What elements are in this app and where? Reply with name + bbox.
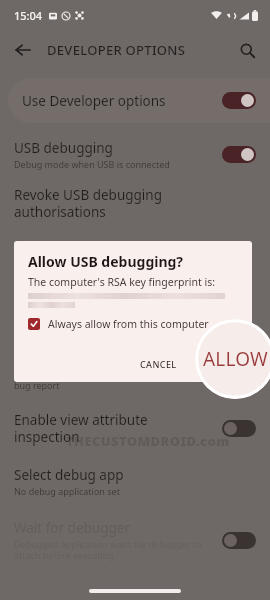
staticText: Revoke USB debugging authorisations [14,186,256,221]
button[interactable]: Toggle off [222,532,256,549]
staticText: Enable view attribute inspection [14,411,214,446]
button[interactable]: CANCEL [134,355,183,373]
staticText: CANCEL [140,358,177,370]
staticText: Wait for debugger [14,519,130,537]
button[interactable]: Select debug app [0,464,270,499]
staticText: USB debugging [14,139,113,157]
staticText: No debug application set [14,485,120,497]
button[interactable]: Wait for debugger [0,517,270,563]
button[interactable]: Bug report shortcut [0,347,270,393]
staticText: The computer's RSA key fingerprint is: [28,275,216,289]
button[interactable]: Toggle off [222,420,256,437]
button[interactable]: Revoke USB debugging authorisations [0,184,270,223]
button[interactable]: Use Developer options [8,78,270,123]
staticText: Always allow from this computer [48,317,209,331]
staticText: Allow USB debugging? [28,252,184,271]
staticText: Use Developer options [22,92,222,110]
staticText: Debug mode when USB is connected [14,158,170,170]
staticText: THECUSTOMDROID.com [66,432,230,450]
staticText: Show a button in the power menu for taki… [14,368,209,391]
button[interactable]: Toggle on [222,146,256,163]
button[interactable]: Enable view attribute inspection [0,409,270,448]
button[interactable]: Allow [195,319,270,399]
button[interactable]: Back [6,33,40,67]
button[interactable]: Toggle on [222,92,256,109]
staticText: Select debug app [14,466,124,484]
button[interactable]: Search [230,33,264,67]
button[interactable]: Toggle off [222,362,256,379]
staticText: 15:04 [14,8,43,23]
staticText: ALLOW [203,358,236,370]
staticText: ALLOW [203,346,268,372]
button[interactable]: ALLOW [197,355,242,373]
staticText: DEVELOPER OPTIONS [47,41,186,59]
button[interactable]: Always allow from this computer [28,317,209,331]
button[interactable]: USB debugging [0,137,270,172]
